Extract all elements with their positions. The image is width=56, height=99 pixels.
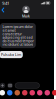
button[interactable]: App (0, 90, 5, 95)
button[interactable]: App (7, 90, 12, 95)
button[interactable]: App (14, 90, 20, 95)
button[interactable]: App (29, 90, 35, 95)
button[interactable]: Camera (7, 83, 13, 88)
button[interactable]: App (37, 90, 42, 95)
button[interactable]: Back (0, 5, 6, 14)
button[interactable]: App (22, 90, 27, 95)
staticText: Pulsuka Lim (1, 52, 21, 57)
staticText: Mark (22, 14, 30, 18)
button[interactable]: Add attachment (0, 83, 5, 88)
button[interactable]: Mark (0, 6, 54, 18)
staticText: 9:41 (2, 0, 9, 6)
button[interactable]: App (44, 90, 50, 95)
button[interactable]: App (52, 90, 56, 95)
staticText: Lorem ipsum dolor sit amet consectetur a… (2, 24, 33, 47)
